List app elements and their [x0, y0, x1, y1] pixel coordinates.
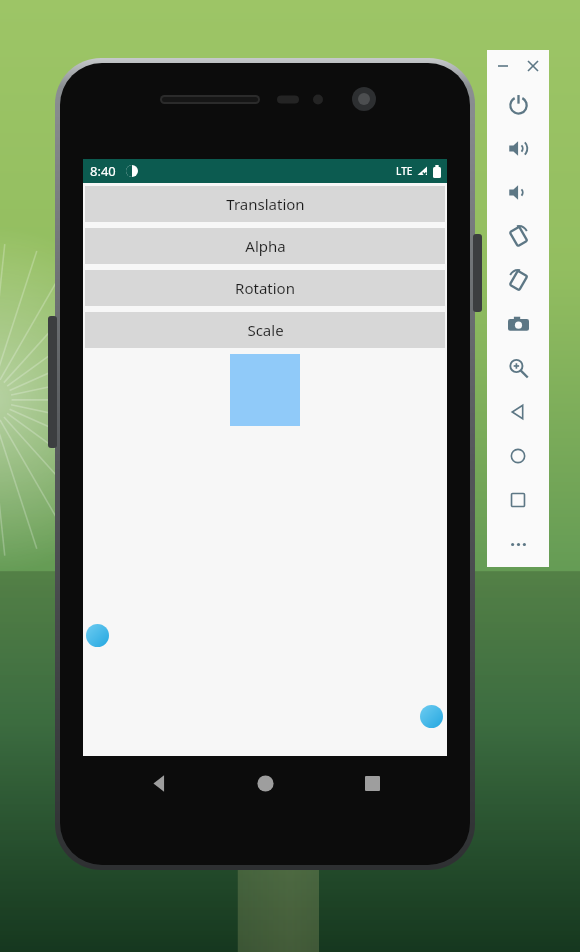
button[interactable]: Take screenshot	[487, 302, 549, 346]
button[interactable]: Minimize	[493, 56, 513, 76]
staticText: Translation	[226, 194, 305, 214]
button[interactable]: Translation	[85, 186, 445, 222]
button[interactable]: Volume down	[487, 170, 549, 214]
button[interactable]: Home	[487, 434, 549, 478]
staticText: Scale	[247, 320, 284, 340]
button[interactable]: Home	[234, 756, 296, 810]
button[interactable]: Recent apps	[341, 756, 403, 810]
button[interactable]: Scale	[85, 312, 445, 348]
button[interactable]: Volume up	[487, 126, 549, 170]
staticText: Alpha	[245, 236, 286, 256]
button[interactable]: Close	[523, 56, 543, 76]
button[interactable]: Back	[487, 390, 549, 434]
button[interactable]: Alpha	[85, 228, 445, 264]
staticText: LTE	[396, 164, 413, 178]
button[interactable]: Rotate right	[487, 258, 549, 302]
button[interactable]: Zoom	[487, 346, 549, 390]
button[interactable]: Rotation	[85, 270, 445, 306]
button[interactable]: Overview	[487, 478, 549, 522]
staticText: Rotation	[235, 278, 295, 298]
button[interactable]: Back	[128, 756, 190, 810]
staticText: 8:40	[90, 162, 116, 180]
button[interactable]: Power	[487, 82, 549, 126]
button[interactable]: Rotate left	[487, 214, 549, 258]
button[interactable]: More	[487, 522, 549, 566]
